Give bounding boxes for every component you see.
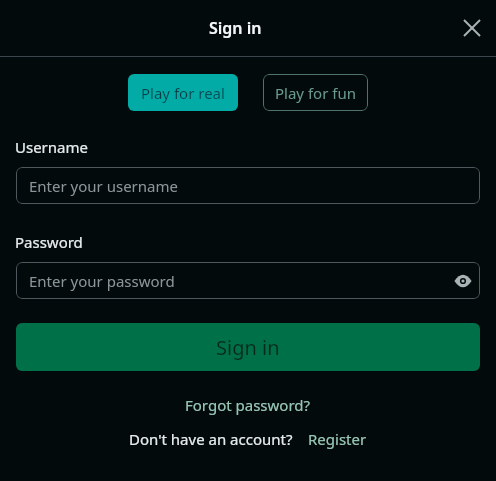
staticText: Don't have an account? [129, 429, 293, 449]
staticText: Play for fun [275, 83, 356, 103]
staticText: Enter your username [29, 176, 178, 196]
button[interactable]: Show password [449, 267, 477, 295]
staticText: Play for real [141, 83, 225, 103]
staticText: Enter your password [29, 271, 175, 291]
staticText: Password [15, 232, 83, 252]
staticText: Register [308, 429, 367, 449]
staticText: Forgot password? [185, 395, 311, 415]
button[interactable]: Register [301, 422, 374, 456]
button[interactable]: Enter your username [16, 167, 480, 204]
button[interactable]: Sign in [16, 323, 480, 371]
button[interactable]: Play for real [128, 74, 238, 111]
button[interactable]: Play for fun [263, 74, 368, 111]
staticText: Sign in [209, 17, 262, 39]
button[interactable]: Forgot password? [179, 388, 317, 422]
button[interactable]: Enter your password [16, 262, 480, 299]
button[interactable]: Close [452, 8, 492, 48]
staticText: Sign in [216, 334, 280, 361]
staticText: Username [15, 137, 88, 157]
